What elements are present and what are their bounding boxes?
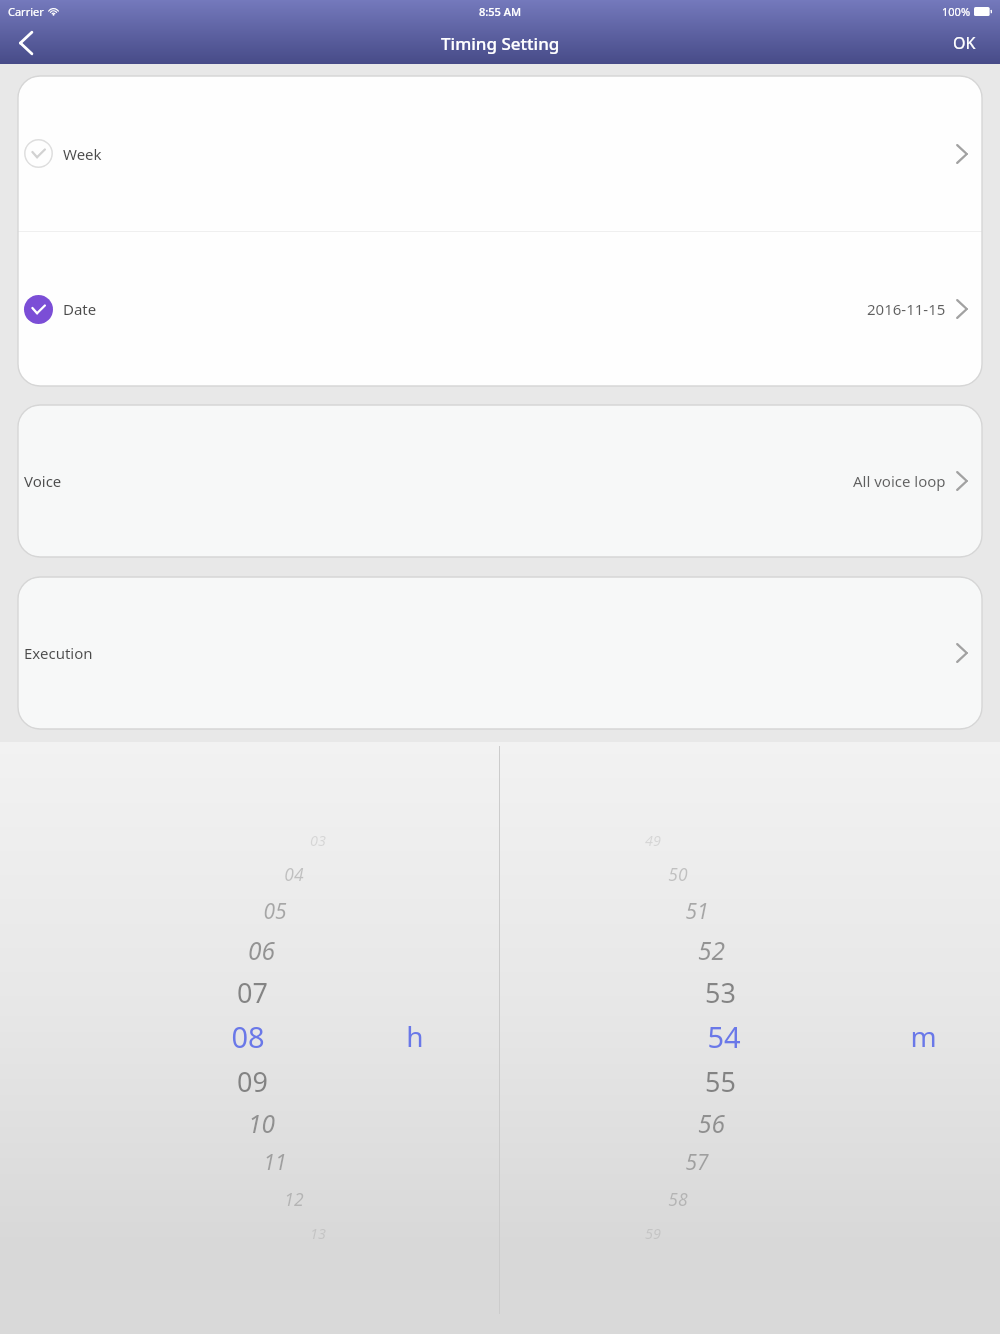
staticText: 53 (705, 974, 736, 1011)
staticText: 05 (263, 897, 287, 926)
staticText: Week (63, 144, 102, 164)
button[interactable]: Back (0, 22, 52, 64)
staticText: 49 (645, 830, 661, 850)
staticText: 8:55 AM (479, 4, 522, 19)
staticText: 2016-11-15 (867, 299, 946, 319)
staticText: 54 (707, 1017, 741, 1056)
button[interactable]: OK (928, 22, 1000, 64)
staticText: 50 (668, 862, 688, 886)
button[interactable]: Week (18, 76, 982, 231)
staticText: 51 (685, 897, 709, 926)
button[interactable]: Date (18, 232, 982, 386)
button[interactable]: Voice (18, 405, 982, 557)
staticText: Execution (24, 643, 93, 663)
button[interactable]: Execution (18, 577, 982, 729)
staticText: h (406, 1017, 424, 1055)
staticText: 55 (705, 1063, 736, 1100)
staticText: 100% (942, 4, 971, 19)
staticText: 56 (698, 1107, 725, 1140)
staticText: 09 (237, 1063, 268, 1100)
staticText: 59 (645, 1223, 661, 1243)
staticText: m (910, 1017, 937, 1055)
staticText: 03 (310, 830, 326, 850)
staticText: 08 (231, 1017, 265, 1056)
staticText: All voice loop (853, 471, 946, 491)
staticText: 12 (284, 1187, 304, 1211)
staticText: Voice (24, 471, 62, 491)
staticText: 10 (248, 1107, 275, 1140)
staticText: OK (953, 32, 976, 54)
staticText: Date (63, 299, 97, 319)
staticText: 04 (284, 862, 304, 886)
staticText: 07 (237, 974, 268, 1011)
staticText: 11 (263, 1148, 287, 1177)
staticText: Carrier (8, 4, 44, 19)
staticText: 06 (248, 934, 275, 967)
staticText: 57 (685, 1148, 709, 1177)
staticText: 13 (310, 1223, 326, 1243)
staticText: 52 (698, 934, 725, 967)
staticText: Timing Setting (441, 32, 560, 55)
staticText: 58 (668, 1187, 688, 1211)
